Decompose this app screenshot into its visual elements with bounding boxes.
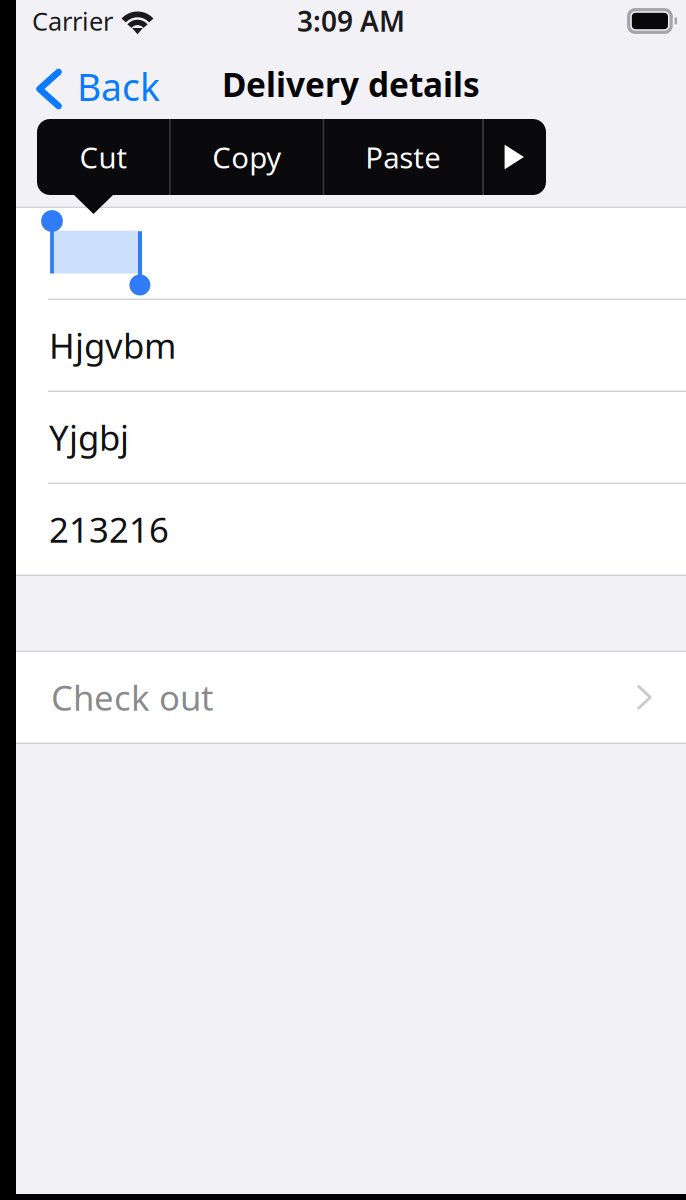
staticText: Check out [51, 674, 214, 720]
staticText: 213216 [49, 506, 169, 552]
button[interactable]: Back [16, 42, 174, 132]
staticText: Cut [80, 137, 128, 176]
staticText: 3:09 AM [297, 2, 405, 40]
staticText: Delivery details [222, 62, 480, 106]
button[interactable]: Check out [16, 652, 686, 743]
staticText: Yjgbj [49, 414, 129, 460]
staticText: Carrier [32, 4, 113, 38]
staticText: Back [77, 62, 160, 111]
button[interactable]: More [484, 119, 545, 195]
staticText: Paste [365, 137, 441, 176]
staticText: Hjgvbm [49, 322, 176, 368]
staticText: Copy [212, 137, 281, 176]
button[interactable]: Paste [324, 119, 482, 195]
button[interactable]: Cut [38, 119, 169, 195]
button[interactable]: Copy [171, 119, 323, 195]
